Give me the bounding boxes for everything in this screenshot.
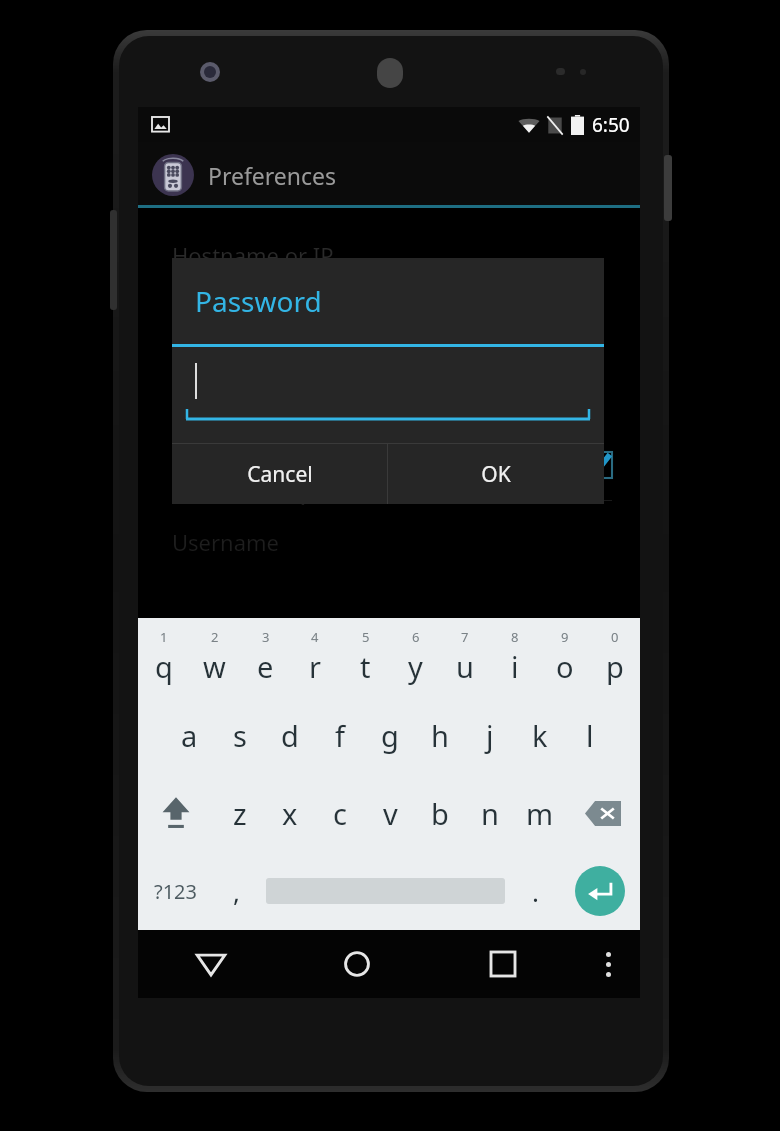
button[interactable]: Cancel [172,444,387,504]
button[interactable]: n [465,774,515,852]
button[interactable]: Space [261,852,510,930]
button[interactable]: 6 [390,618,440,696]
button[interactable]: 1 [138,618,189,696]
staticText: 6:50 [592,112,630,138]
staticText: x [282,794,298,833]
staticText: OK [481,460,511,489]
button[interactable]: , [212,852,261,930]
staticText: UpdateStar.com [277,466,501,507]
staticText: a [181,716,198,755]
button[interactable]: x [265,774,315,852]
button[interactable]: f [315,696,365,774]
button[interactable]: Home [284,930,430,998]
staticText: 2 [211,628,219,646]
button[interactable]: k [515,696,565,774]
button[interactable]: 9 [540,618,590,696]
staticText: Preferences [208,160,337,191]
button[interactable]: g [365,696,415,774]
button[interactable]: Backspace [565,774,640,852]
staticText: 4 [311,628,319,646]
staticText: o [556,647,574,686]
staticText: 9 [561,628,569,646]
staticText: 0 [611,628,619,646]
button[interactable]: d [265,696,315,774]
other: App icon [152,154,194,196]
staticText: c [333,794,347,833]
staticText: u [456,647,474,686]
button[interactable]: z [214,774,265,852]
button[interactable]: 4 [290,618,340,696]
button[interactable]: Shift [138,774,214,852]
button[interactable]: Back [138,930,284,998]
staticText: Username [172,527,280,557]
button[interactable]: c [315,774,365,852]
staticText: . [532,874,539,909]
button[interactable]: j [465,696,515,774]
staticText: t [360,647,371,686]
button[interactable]: 0 [590,618,640,696]
button[interactable]: b [415,774,465,852]
staticText: Password [195,282,322,320]
staticText: y [408,647,423,686]
staticText: 5 [362,628,370,646]
staticText: ?123 [154,878,197,905]
button[interactable]: Recents [430,930,576,998]
staticText: g [381,716,399,755]
button[interactable]: m [515,774,565,852]
staticText: 3 [262,628,270,646]
button[interactable]: h [415,696,465,774]
staticText: z [233,794,247,833]
button[interactable]: Login [172,442,612,488]
staticText: l [586,716,594,755]
button[interactable]: v [365,774,415,852]
staticText: d [281,716,299,755]
staticText: 6 [412,628,420,646]
button[interactable]: OK [388,444,604,504]
staticText: n [481,794,499,833]
button[interactable]: 8 [490,618,540,696]
staticText: e [257,647,274,686]
staticText: p [606,647,624,686]
staticText: v [383,794,398,833]
button[interactable]: 5 [340,618,390,696]
button[interactable]: s [215,696,265,774]
staticText: Cancel [247,460,313,489]
staticText: 8 [511,628,519,646]
button[interactable]: 7 [440,618,490,696]
staticText: r [309,647,321,686]
button[interactable]: a [164,696,215,774]
staticText: , [233,874,240,909]
button[interactable]: 2 [189,618,240,696]
staticText: 7 [461,628,469,646]
staticText: k [532,716,548,755]
staticText: i [511,647,519,686]
button[interactable]: Enter [560,852,640,930]
staticText: Hostname or IP [172,240,334,270]
staticText: s [233,716,247,755]
button[interactable]: . [510,852,560,930]
button[interactable]: l [565,696,615,774]
staticText: b [431,794,449,833]
staticText: j [486,716,494,755]
staticText: h [431,716,449,755]
button[interactable]: More options [576,930,640,998]
staticText: f [335,716,345,755]
staticText: m [526,794,554,833]
staticText: 1 [160,628,168,646]
staticText: q [155,647,173,686]
button[interactable]: ?123 [138,852,212,930]
button[interactable]: 3 [240,618,290,696]
staticText: w [203,647,226,686]
